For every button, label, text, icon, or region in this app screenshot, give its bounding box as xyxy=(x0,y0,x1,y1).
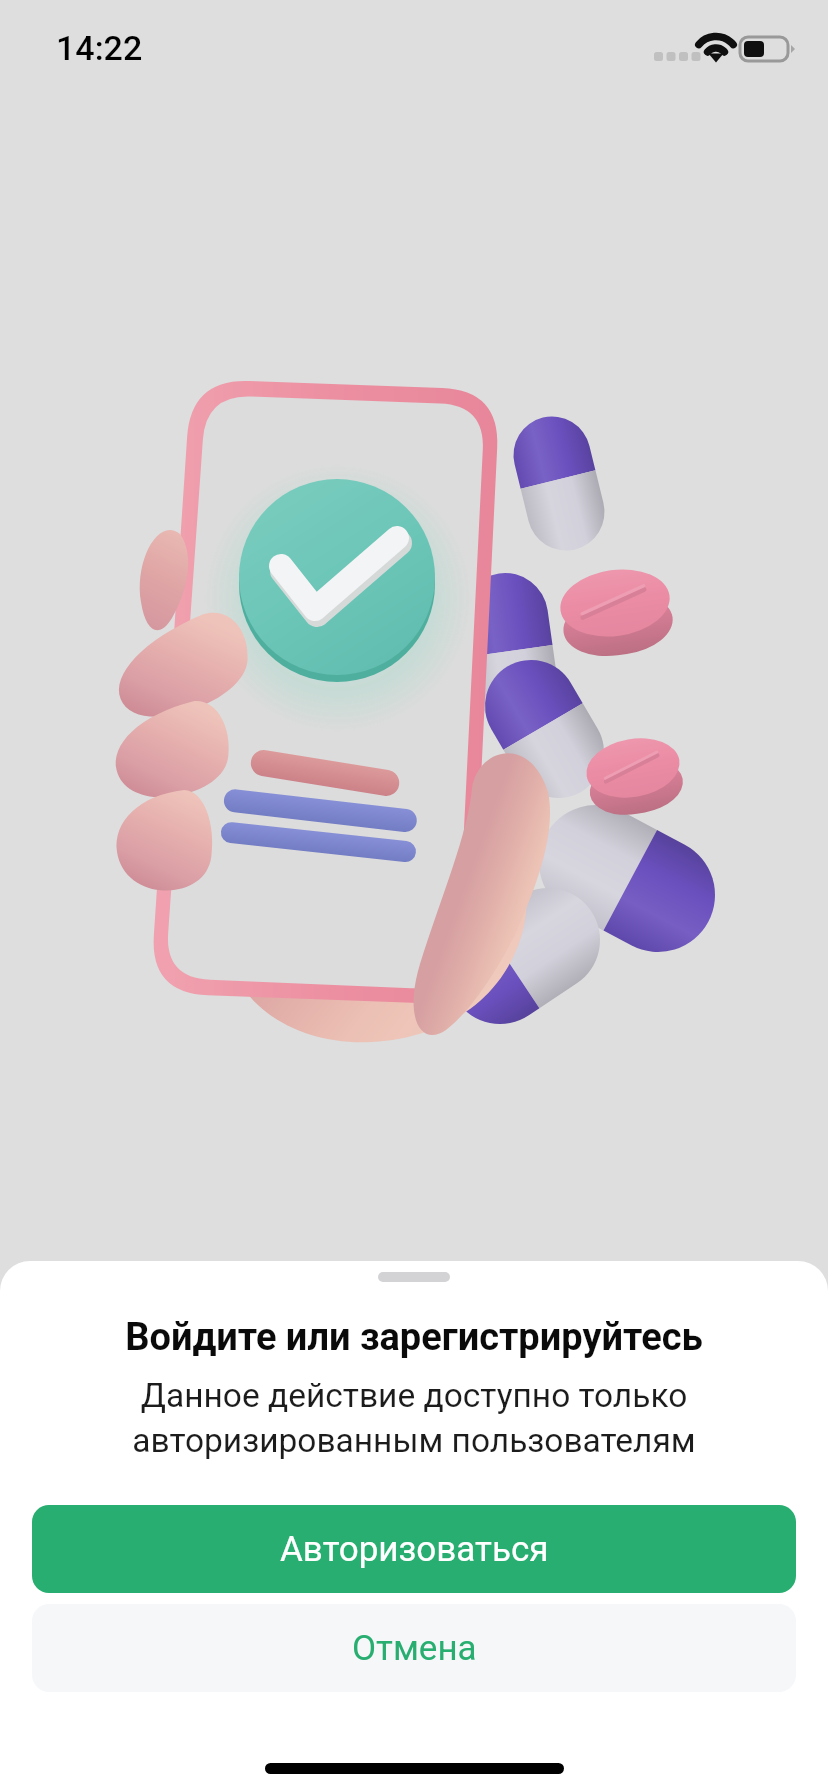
staticText: Войдите или зарегистрируйтесь xyxy=(0,1315,828,1360)
button[interactable]: Авторизоваться xyxy=(32,1505,796,1593)
staticText: 14:22 xyxy=(56,28,143,68)
button[interactable]: Отмена xyxy=(32,1604,796,1692)
staticText: Новый заказ xyxy=(216,1257,450,1302)
other: Status icons xyxy=(645,24,805,72)
staticText: Авторизоваться xyxy=(280,1529,549,1570)
staticText: Отмена xyxy=(352,1628,477,1669)
staticText: Данное действие доступно только авторизи… xyxy=(0,1376,828,1460)
